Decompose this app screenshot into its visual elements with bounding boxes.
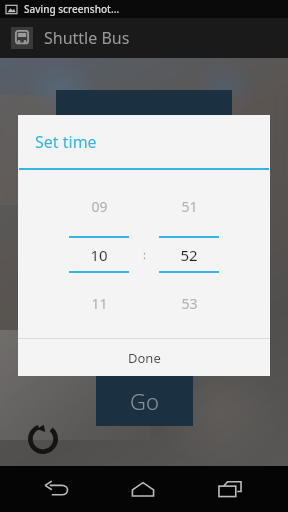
staticText: 10 bbox=[90, 245, 108, 265]
staticText: Done bbox=[128, 349, 161, 367]
staticText: Set time bbox=[35, 131, 97, 153]
staticText: : bbox=[143, 247, 146, 262]
button[interactable]: Recent apps bbox=[201, 466, 259, 512]
button[interactable]: Back bbox=[28, 466, 86, 512]
staticText: 09 bbox=[91, 197, 108, 216]
button[interactable]: 09 bbox=[67, 190, 131, 319]
staticText: 53 bbox=[181, 294, 198, 313]
other: Shuttle Bus logo bbox=[11, 27, 33, 49]
staticText: 51 bbox=[181, 197, 198, 216]
button[interactable]: Refresh bbox=[20, 416, 66, 462]
staticText: Go bbox=[130, 386, 159, 416]
button[interactable]: Go bbox=[96, 376, 193, 426]
staticText: 52 bbox=[180, 245, 198, 265]
staticText: Saving screenshot… bbox=[24, 2, 119, 16]
button[interactable]: 51 bbox=[157, 190, 221, 319]
button[interactable]: Done bbox=[18, 339, 270, 376]
button[interactable]: Home bbox=[114, 466, 172, 512]
staticText: Shuttle Bus bbox=[44, 27, 130, 49]
staticText: 11 bbox=[91, 294, 108, 313]
